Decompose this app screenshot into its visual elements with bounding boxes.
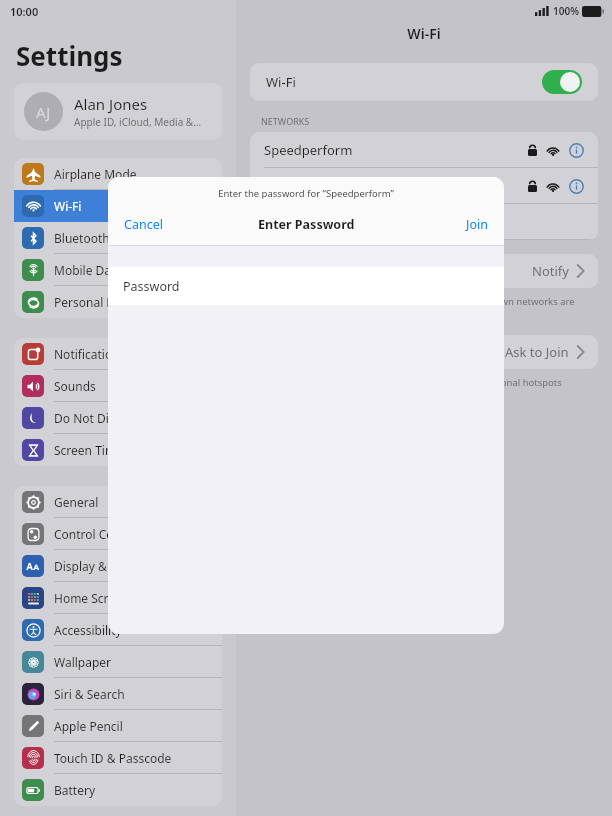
staticText: Wi-Fi (54, 198, 82, 214)
button[interactable]: Bluetooth (14, 222, 222, 254)
staticText: Screen Time (54, 442, 123, 458)
staticText: Notifications (54, 346, 126, 362)
button[interactable]: Notify (250, 254, 598, 288)
staticText: Settings (16, 38, 123, 73)
button[interactable] (250, 204, 598, 240)
staticText: Cancel (124, 216, 163, 233)
staticText: Do Not Disturb (54, 410, 139, 426)
staticText: Mobile Data (54, 262, 123, 278)
button[interactable]: Do Not Disturb (14, 402, 222, 434)
button[interactable]: Screen Time (14, 434, 222, 466)
staticText: Allow this device to automatically disco… (258, 376, 562, 402)
button[interactable]: Cancel (108, 211, 179, 238)
staticText: Bluetooth (54, 230, 110, 246)
staticText: Siri & Search (54, 686, 125, 702)
button[interactable]: Wi-Fi (250, 63, 598, 101)
button[interactable]: Personal Hotspot (14, 286, 222, 318)
staticText: Ask to Join (505, 343, 569, 361)
staticText: General (54, 494, 99, 510)
button[interactable]: Display & Brightness (14, 550, 222, 582)
button[interactable]: Join (450, 211, 504, 238)
staticText: Notify (532, 262, 569, 280)
button[interactable]: More info (569, 143, 584, 158)
staticText: NETWORKS (261, 115, 310, 127)
staticText: Enter the password for “Speedperform” (108, 187, 504, 200)
button[interactable]: Password (108, 267, 504, 305)
button[interactable]: Home Screen & Dock (14, 582, 222, 614)
staticText: Airplane Mode (54, 166, 137, 182)
staticText: Wi-Fi (236, 24, 612, 43)
button[interactable]: Mobile Data (14, 254, 222, 286)
button[interactable]: Control Centre (14, 518, 222, 550)
button[interactable]: Wallpaper (14, 646, 222, 678)
button[interactable]: Notifications (14, 338, 222, 370)
button[interactable]: AJ (14, 83, 222, 140)
staticText: Wi-Fi (266, 73, 296, 91)
staticText: Control Centre (54, 526, 137, 542)
staticText: Touch ID & Passcode (54, 750, 172, 766)
staticText: AJ (36, 102, 51, 122)
staticText: Enter Password (258, 216, 355, 233)
staticText: Display & Brightness (54, 558, 171, 574)
button[interactable]: More info (569, 179, 584, 194)
staticText: Apple Pencil (54, 718, 123, 734)
staticText: Password (123, 278, 180, 295)
button[interactable]: Sounds (14, 370, 222, 402)
staticText: Join (466, 216, 488, 233)
staticText: Home Screen & Dock (54, 590, 173, 606)
staticText: Sounds (54, 378, 96, 394)
staticText: Accessibility (54, 622, 122, 638)
staticText: Known networks will be joined automatica… (258, 295, 575, 321)
button[interactable]: Airplane Mode (14, 158, 222, 190)
staticText: Wallpaper (54, 654, 112, 670)
button[interactable]: Wi-Fi (14, 190, 222, 222)
button[interactable]: Ask to Join (250, 335, 598, 369)
staticText: Battery (54, 782, 96, 798)
button[interactable]: Siri & Search (14, 678, 222, 710)
button[interactable]: Accessibility (14, 614, 222, 646)
button[interactable]: Apple Pencil (14, 710, 222, 742)
staticText: Personal Hotspot (54, 294, 152, 310)
staticText: 100% (553, 4, 579, 18)
button[interactable]: Touch ID & Passcode (14, 742, 222, 774)
button[interactable]: Battery (14, 774, 222, 806)
staticText: 10:00 (10, 4, 39, 19)
staticText: Apple ID, iCloud, Media &… (74, 115, 202, 129)
button[interactable]: Speedperform (250, 132, 598, 168)
staticText: Speedperform (264, 141, 353, 159)
staticText: Alan Jones (74, 94, 148, 114)
button[interactable]: More info (250, 168, 598, 204)
button[interactable]: General (14, 486, 222, 518)
